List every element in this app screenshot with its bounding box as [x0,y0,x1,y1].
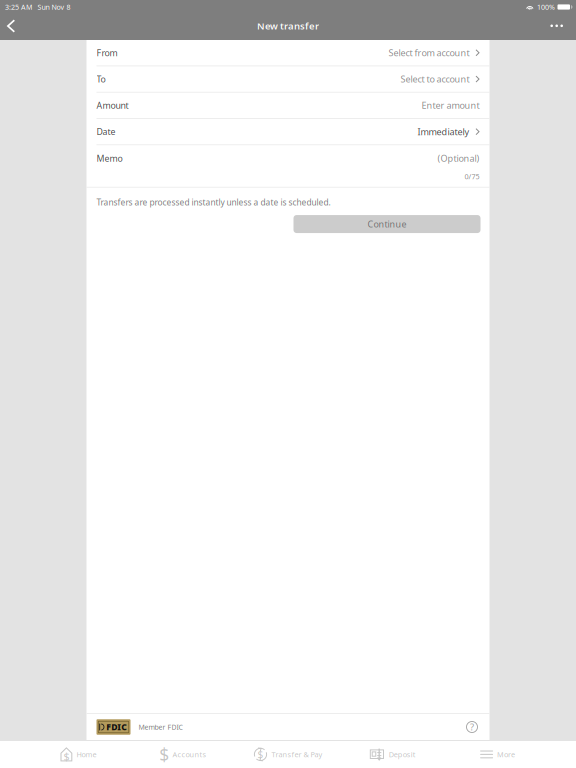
staticText: FDIC [106,721,127,733]
staticText: Memo [96,152,122,164]
button[interactable]: Deposit [340,741,445,768]
staticText: Member FDIC [138,722,182,732]
button[interactable]: More [445,741,550,768]
staticText: $ [257,748,263,761]
staticText: ? [470,721,474,733]
staticText: Continue [367,218,406,230]
staticText: $ [159,743,169,766]
staticText: Transfers are processed instantly unless… [96,197,330,208]
button[interactable]: Memo [86,145,489,188]
staticText: $ [63,749,69,764]
staticText: 100% [537,2,555,12]
button[interactable]: $ [131,741,236,768]
staticText: Date [96,126,115,138]
button[interactable]: Amount [86,93,489,119]
staticText: Accounts [172,749,206,759]
staticText: 3:25 AM [5,2,32,12]
staticText: To [96,73,105,85]
button[interactable]: Back [0,14,27,40]
staticText: Deposit [389,749,416,759]
staticText: New transfer [257,19,319,32]
button[interactable]: To [86,66,489,93]
button[interactable]: $ [26,741,131,768]
button[interactable]: Continue [293,215,480,233]
staticText: Home [76,749,96,759]
staticText: Transfer & Pay [272,749,323,759]
staticText: Select to account [400,73,469,85]
staticText: From [96,47,117,59]
staticText: More [497,749,515,759]
staticText: 0/75 [464,171,479,181]
staticText: Select from account [388,47,469,59]
staticText: Sun Nov 8 [37,2,70,12]
button[interactable]: Date [86,119,489,145]
staticText: Amount [96,99,128,111]
button[interactable]: From [86,40,489,66]
button[interactable]: Help [464,719,479,734]
staticText: Enter amount [421,99,479,111]
button[interactable]: More options [537,14,576,40]
staticText: Immediately [417,125,469,138]
staticText: (Optional) [437,152,479,164]
button[interactable]: $ [236,741,340,768]
